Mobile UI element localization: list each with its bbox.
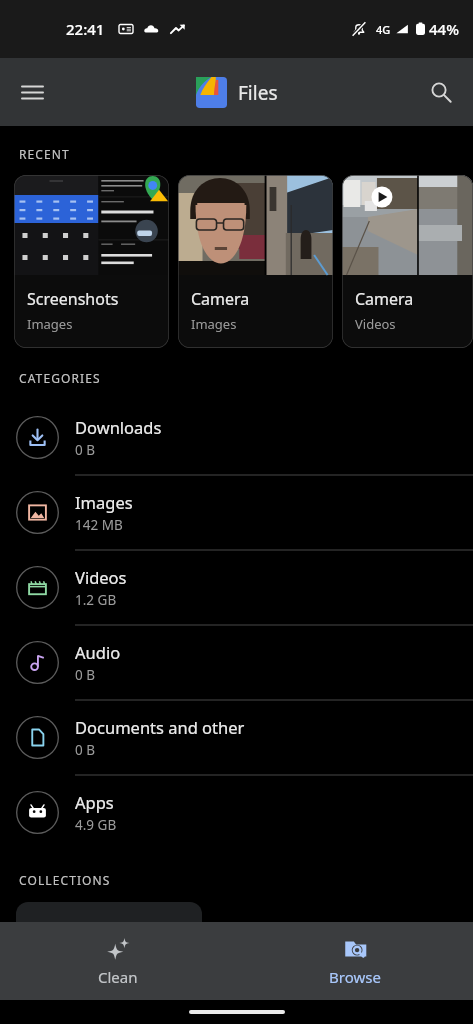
staticText: Images	[75, 491, 133, 513]
staticText: Audio	[75, 641, 121, 663]
staticText: Videos	[75, 566, 127, 588]
button[interactable]: Clean	[0, 922, 236, 1000]
staticText: COLLECTIONS	[19, 872, 111, 888]
staticText: 22:41	[66, 19, 105, 39]
staticText: 4G	[376, 22, 391, 37]
staticText: CATEGORIES	[19, 370, 101, 386]
staticText: Files	[238, 80, 278, 106]
staticText: Documents and other	[75, 716, 245, 738]
button[interactable]: Camera	[342, 175, 473, 348]
staticText: Browse	[329, 967, 381, 987]
staticText: Images	[191, 315, 237, 333]
staticText: Downloads	[75, 416, 162, 438]
staticText: 0 B	[75, 666, 96, 684]
staticText: Camera	[191, 288, 250, 310]
staticText: Apps	[75, 791, 114, 813]
button[interactable]: Audio	[0, 625, 473, 700]
staticText: Clean	[98, 967, 138, 987]
button[interactable]: Screenshots	[14, 175, 169, 348]
button[interactable]: Images	[0, 475, 473, 550]
staticText: Videos	[355, 315, 396, 333]
staticText: Images	[27, 315, 73, 333]
button[interactable]: Browse	[236, 922, 473, 1000]
staticText: 0 B	[75, 741, 96, 759]
button[interactable]: Search	[419, 70, 463, 114]
staticText: RECENT	[19, 146, 70, 162]
staticText: 0 B	[75, 441, 96, 459]
button[interactable]	[16, 902, 202, 972]
staticText: 4.9 GB	[75, 816, 117, 834]
staticText: 142 MB	[75, 516, 123, 534]
staticText: 44%	[429, 19, 459, 39]
button[interactable]: Camera	[178, 175, 333, 348]
button[interactable]: Videos	[0, 550, 473, 625]
staticText: Screenshots	[27, 288, 119, 310]
staticText: Camera	[355, 288, 414, 310]
button[interactable]: Open navigation menu	[10, 70, 54, 114]
button[interactable]: Documents and other	[0, 700, 473, 775]
staticText: 1.2 GB	[75, 591, 117, 609]
button[interactable]: Apps	[0, 775, 473, 850]
button[interactable]: Downloads	[0, 400, 473, 475]
